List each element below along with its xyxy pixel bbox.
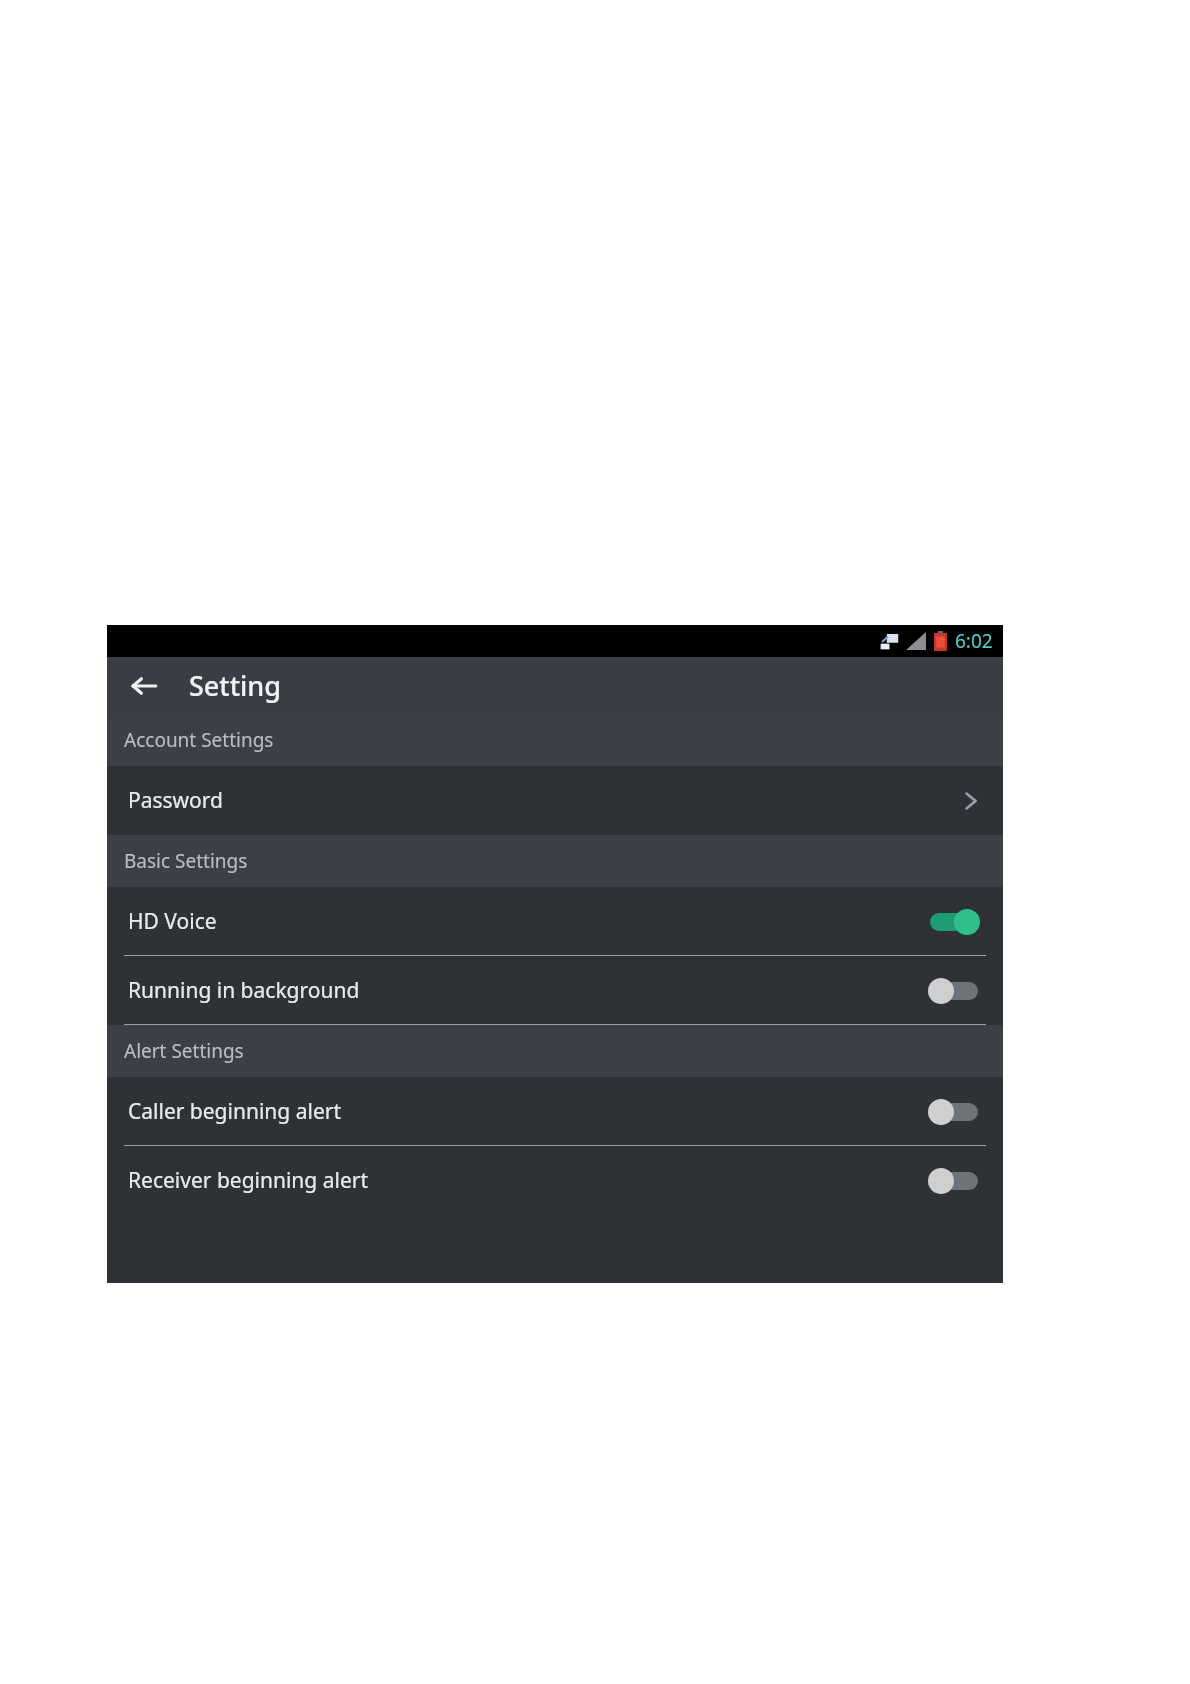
other: Toggle on <box>928 909 980 935</box>
button[interactable]: Running in background <box>107 956 1003 1025</box>
staticText: HD Voice <box>128 907 217 936</box>
staticText: Running in background <box>128 976 360 1005</box>
staticText: Basic Settings <box>124 848 248 874</box>
other: Toggle off <box>928 1168 980 1194</box>
other: Toggle off <box>928 978 980 1004</box>
staticText: Account Settings <box>124 727 274 753</box>
staticText: 6:02 <box>955 628 993 654</box>
staticText: Caller beginning alert <box>128 1097 341 1126</box>
button[interactable]: Password <box>107 766 1003 835</box>
staticText: Receiver beginning alert <box>128 1166 369 1195</box>
button[interactable]: HD Voice <box>107 887 1003 956</box>
button[interactable]: Back <box>121 663 167 709</box>
button[interactable]: Caller beginning alert <box>107 1077 1003 1146</box>
staticText: Password <box>128 786 223 815</box>
button[interactable]: Receiver beginning alert <box>107 1146 1003 1215</box>
staticText: Alert Settings <box>124 1038 244 1064</box>
staticText: Setting <box>189 667 281 704</box>
other: Toggle off <box>928 1099 980 1125</box>
